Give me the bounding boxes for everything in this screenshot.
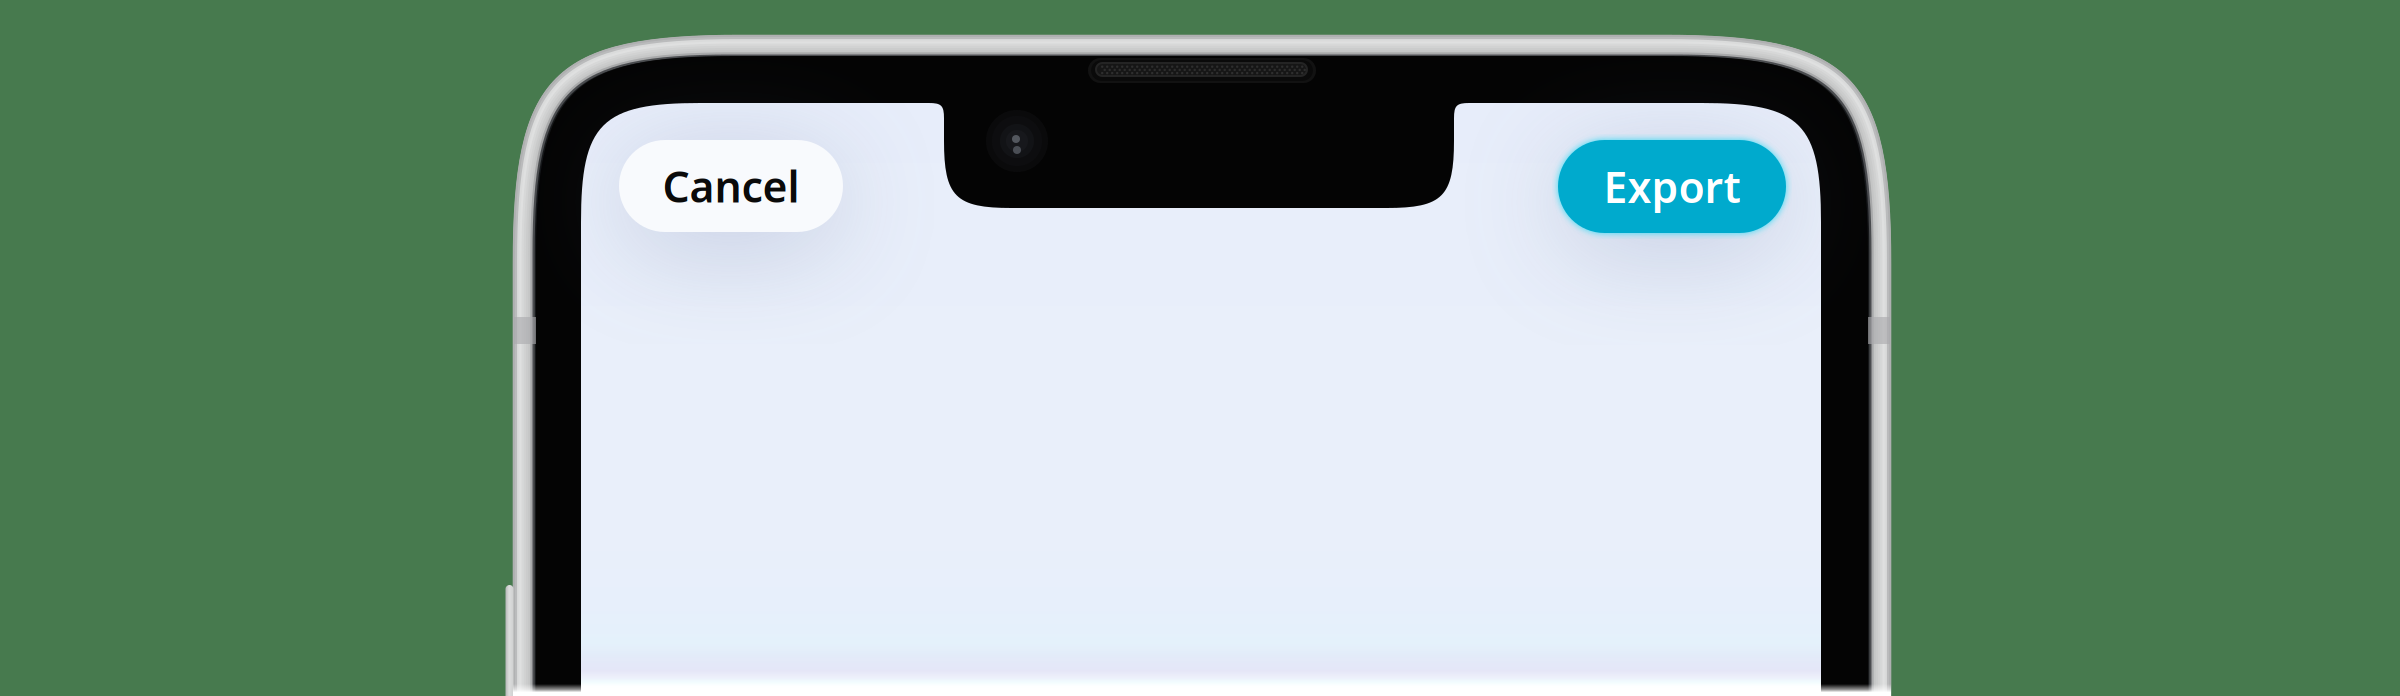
button[interactable]: Cancel <box>619 140 843 232</box>
button[interactable]: Export <box>1558 140 1786 233</box>
staticText: Cancel <box>662 158 799 214</box>
staticText: Export <box>1603 158 1740 215</box>
